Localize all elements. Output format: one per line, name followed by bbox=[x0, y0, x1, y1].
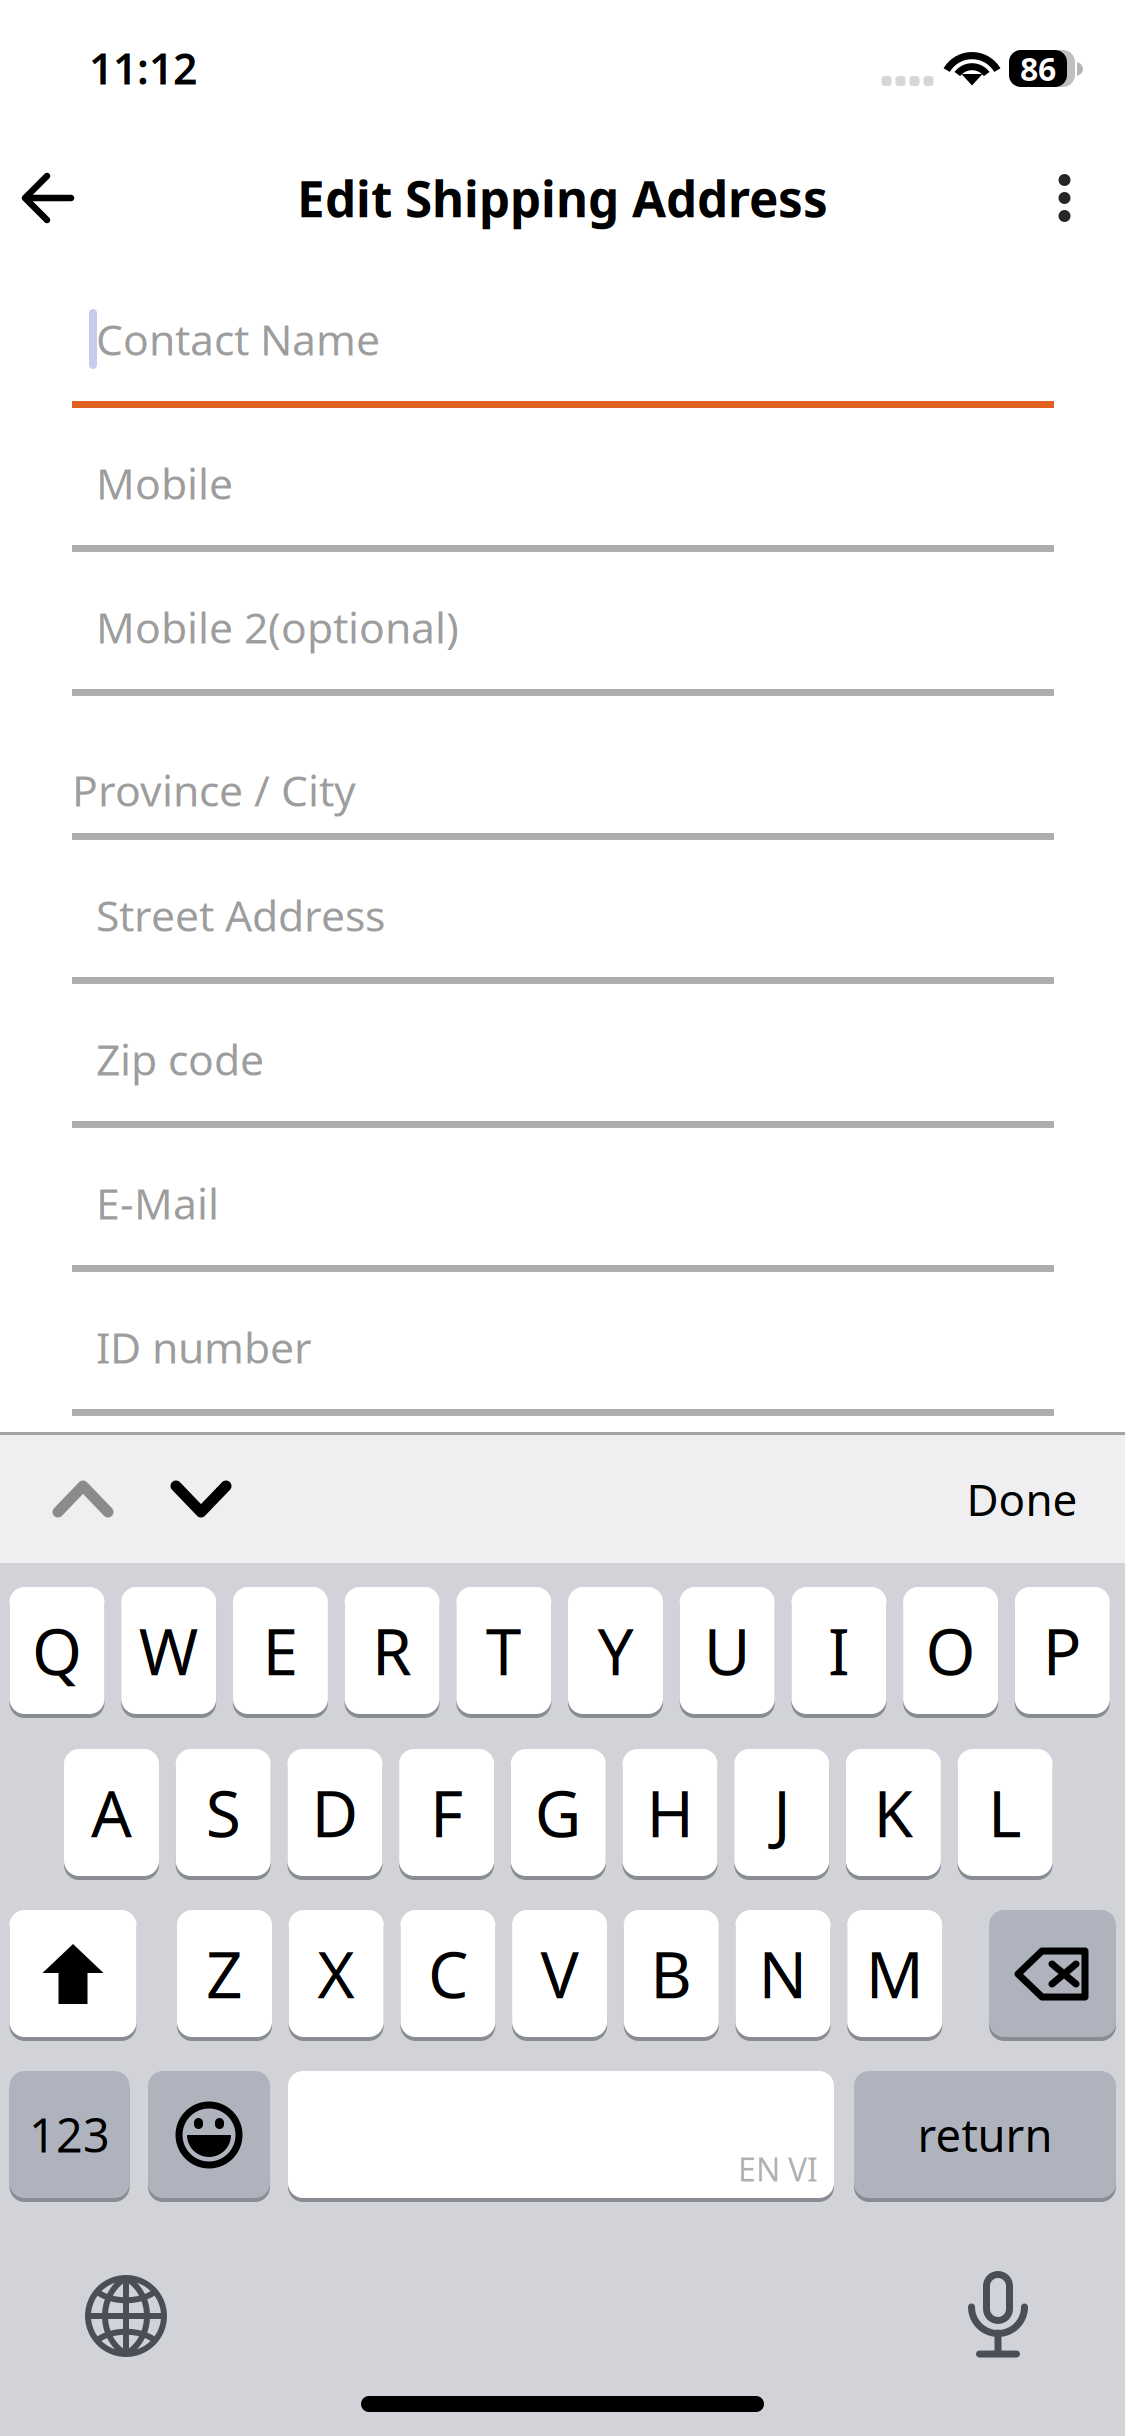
button[interactable]: Switch keyboard bbox=[71, 2261, 181, 2371]
button[interactable]: F bbox=[399, 1749, 494, 1880]
button[interactable]: Dictation bbox=[943, 2257, 1053, 2367]
staticText: Street Address bbox=[96, 887, 385, 943]
staticText: E bbox=[262, 1608, 298, 1693]
button[interactable]: E bbox=[233, 1587, 328, 1718]
button[interactable]: R bbox=[345, 1587, 440, 1718]
staticText: E-Mail bbox=[96, 1175, 219, 1231]
staticText: Q bbox=[32, 1608, 82, 1693]
staticText: W bbox=[139, 1608, 199, 1693]
staticText: M bbox=[866, 1931, 924, 2016]
staticText: return bbox=[917, 2104, 1052, 2165]
button[interactable]: M bbox=[847, 1910, 942, 2041]
staticText: S bbox=[206, 1770, 241, 1855]
staticText: H bbox=[646, 1770, 693, 1855]
button[interactable]: G bbox=[511, 1749, 606, 1880]
button[interactable]: Space bbox=[288, 2071, 834, 2202]
button[interactable]: Next field bbox=[146, 1444, 1125, 1575]
button[interactable]: L bbox=[958, 1749, 1053, 1880]
button[interactable]: Shift bbox=[9, 1910, 136, 2041]
button[interactable]: C bbox=[400, 1910, 495, 2041]
staticText: J bbox=[773, 1770, 790, 1855]
staticText: R bbox=[372, 1608, 412, 1693]
button[interactable]: K bbox=[846, 1749, 941, 1880]
button[interactable]: More options bbox=[1010, 143, 1118, 253]
staticText: Mobile bbox=[96, 455, 233, 511]
button[interactable]: Emoji bbox=[148, 2071, 270, 2202]
staticText: N bbox=[758, 1931, 807, 2016]
staticText: G bbox=[535, 1770, 582, 1855]
staticText: X bbox=[317, 1931, 355, 2016]
button[interactable]: Z bbox=[177, 1910, 272, 2041]
staticText: 86 bbox=[1020, 47, 1056, 90]
staticText: Mobile 2(optional) bbox=[96, 599, 459, 655]
staticText: F bbox=[430, 1770, 463, 1855]
button[interactable]: V bbox=[512, 1910, 607, 2041]
staticText: 11:12 bbox=[89, 40, 197, 96]
button[interactable]: S bbox=[176, 1749, 271, 1880]
button[interactable]: T bbox=[456, 1587, 551, 1718]
button[interactable]: D bbox=[287, 1749, 382, 1880]
staticText: Contact Name bbox=[96, 311, 380, 367]
button[interactable]: H bbox=[622, 1749, 717, 1880]
button[interactable]: Q bbox=[9, 1587, 104, 1718]
staticText: D bbox=[311, 1770, 358, 1855]
button[interactable]: B bbox=[624, 1910, 719, 2041]
staticText: O bbox=[926, 1608, 976, 1693]
button[interactable]: Back bbox=[0, 142, 103, 254]
staticText: EN VI bbox=[738, 2148, 818, 2190]
button[interactable]: P bbox=[1015, 1587, 1110, 1718]
button[interactable]: Previous field bbox=[28, 1444, 1125, 1575]
staticText: I bbox=[828, 1608, 850, 1693]
staticText: Province / City bbox=[72, 762, 356, 818]
staticText: P bbox=[1043, 1608, 1082, 1693]
staticText: V bbox=[541, 1931, 579, 2016]
staticText: C bbox=[428, 1931, 468, 2016]
staticText: 123 bbox=[29, 2103, 110, 2165]
button[interactable]: 123 bbox=[9, 2071, 129, 2202]
button[interactable]: U bbox=[680, 1587, 775, 1718]
staticText: Z bbox=[206, 1931, 243, 2016]
button[interactable]: A bbox=[64, 1749, 159, 1880]
staticText: K bbox=[873, 1770, 913, 1855]
staticText: Done bbox=[966, 1470, 1077, 1528]
staticText: Edit Shipping Address bbox=[297, 165, 828, 231]
staticText: Zip code bbox=[96, 1031, 264, 1087]
button[interactable]: I bbox=[791, 1587, 886, 1718]
staticText: U bbox=[704, 1608, 751, 1693]
button[interactable]: Delete bbox=[989, 1910, 1116, 2041]
button[interactable]: X bbox=[289, 1910, 384, 2041]
button[interactable]: return bbox=[854, 2071, 1116, 2202]
button[interactable]: Y bbox=[568, 1587, 663, 1718]
button[interactable]: J bbox=[734, 1749, 829, 1880]
button[interactable]: N bbox=[735, 1910, 830, 2041]
button[interactable]: W bbox=[121, 1587, 216, 1718]
button[interactable]: O bbox=[903, 1587, 998, 1718]
staticText: ID number bbox=[96, 1319, 312, 1375]
staticText: A bbox=[91, 1770, 132, 1855]
staticText: Y bbox=[597, 1608, 633, 1693]
staticText: B bbox=[650, 1931, 692, 2016]
staticText: L bbox=[988, 1770, 1022, 1855]
staticText: T bbox=[486, 1608, 522, 1693]
button[interactable]: Done bbox=[942, 1444, 1125, 1575]
